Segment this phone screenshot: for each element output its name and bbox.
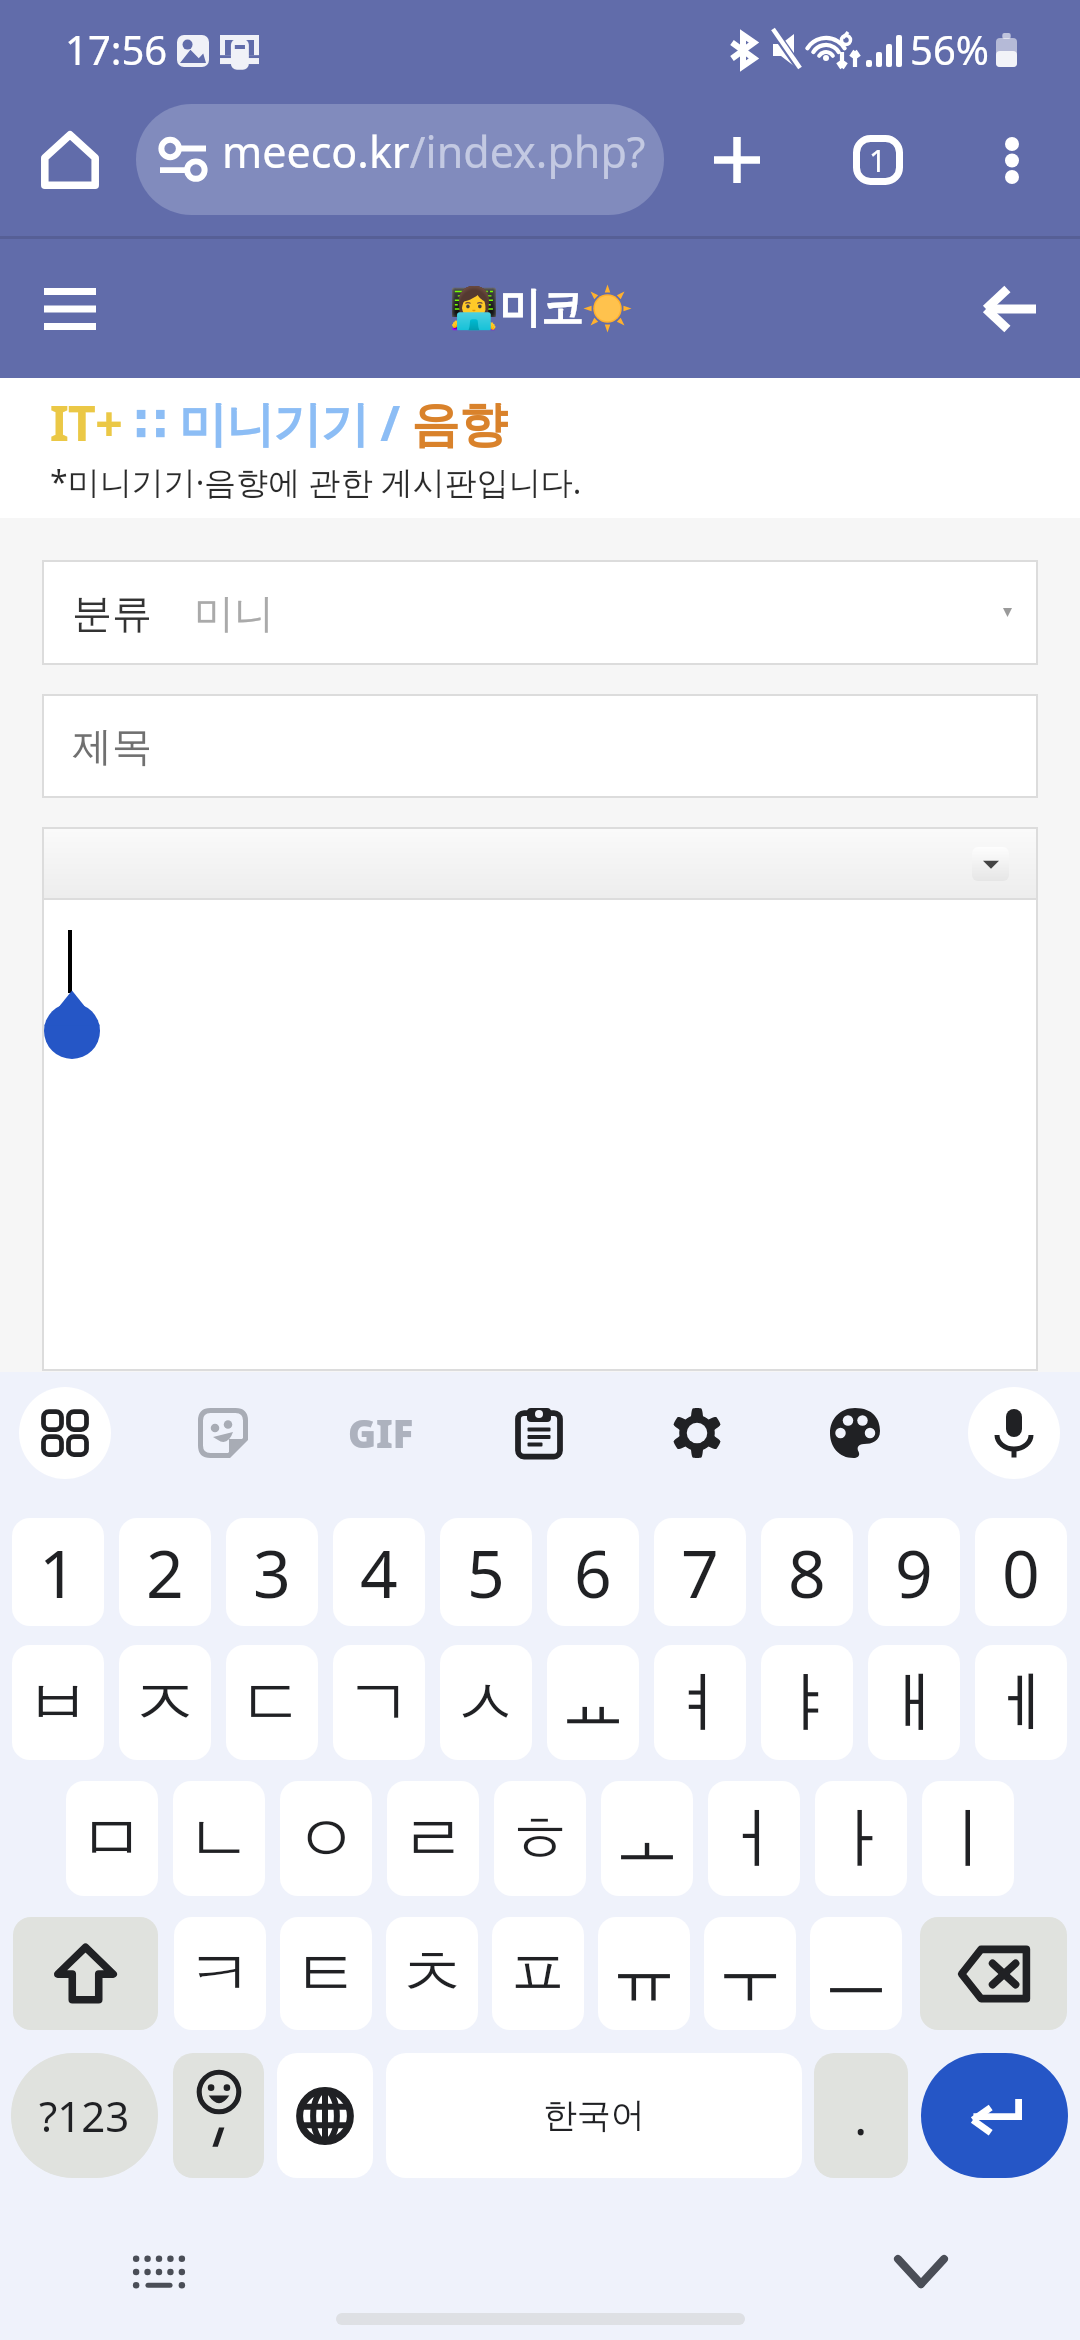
staticText: ㅅ [453,1661,519,1744]
staticText: ㅛ [560,1661,626,1744]
button[interactable]: ㅐ [868,1645,960,1760]
button[interactable]: 0 [975,1518,1067,1626]
staticText: ㅕ [667,1661,733,1744]
staticText: ㅇ [293,1797,359,1880]
staticText: 8 [788,1527,826,1617]
button[interactable]: 2 [119,1518,211,1626]
button[interactable]: ㅔ [975,1645,1067,1760]
button[interactable]: ㅑ [761,1645,853,1760]
staticText: ㄱ [346,1661,412,1744]
button[interactable]: ㅡ [810,1917,902,2030]
staticText: 56% [910,22,989,76]
button[interactable]: 분류 [42,560,1038,665]
staticText: ㅂ [25,1661,91,1744]
staticText: 17:56 [65,22,168,76]
staticText: 3 [253,1527,291,1617]
button[interactable]: ㅕ [654,1645,746,1760]
button[interactable]: ㅗ [601,1781,693,1896]
staticText: ㅐ [881,1661,947,1744]
staticText: ㅗ [614,1797,680,1880]
staticText: 7 [681,1527,719,1617]
staticText: ㅍ [505,1932,571,2015]
button[interactable]: 5 [440,1518,532,1626]
staticText: 0 [1002,1527,1040,1617]
button[interactable]: Editor options [972,847,1009,881]
button[interactable]: ㅏ [815,1781,907,1896]
staticText: . [854,2082,868,2150]
button[interactable]: Enter [921,2053,1068,2178]
staticText: 미코 [499,282,583,335]
staticText: ㅔ [988,1661,1054,1744]
button[interactable]: Themes [809,1387,901,1479]
button[interactable]: ㅂ [12,1645,104,1760]
staticText: ㅋ [187,1932,253,2015]
button[interactable]: 제목 [42,694,1038,798]
button[interactable]: Stickers [177,1387,269,1479]
button[interactable]: Menu [20,259,120,359]
staticText: 9 [895,1527,933,1617]
button[interactable]: ㅊ [386,1917,478,2030]
button[interactable]: ㄱ [333,1645,425,1760]
button[interactable]: ㅁ [66,1781,158,1896]
button[interactable]: ㅇ [280,1781,372,1896]
button[interactable]: ?123 [11,2053,158,2178]
staticText: IT+ ∷ 미니기기 / 음향 [50,390,507,456]
button[interactable]: 6 [547,1518,639,1626]
button[interactable]: Clipboard [493,1387,585,1479]
button[interactable]: More options [966,114,1058,206]
button[interactable]: GIF [335,1387,427,1479]
button[interactable]: Voice input [968,1387,1060,1479]
button[interactable]: Tabs [832,114,924,206]
button[interactable]: ㅈ [119,1645,211,1760]
staticText: 미니 [194,588,274,638]
button[interactable]: ㅜ [704,1917,796,2030]
button[interactable]: ㄹ [387,1781,479,1896]
button[interactable]: 3 [226,1518,318,1626]
button[interactable]: 7 [654,1518,746,1626]
button[interactable]: 8 [761,1518,853,1626]
button[interactable]: ㅠ [598,1917,690,2030]
button[interactable]: ㅎ [494,1781,586,1896]
button[interactable]: Settings [651,1387,743,1479]
button[interactable]: ㅓ [708,1781,800,1896]
button[interactable]: Shift [13,1917,158,2030]
button[interactable]: Keyboard layout [113,2226,205,2318]
button[interactable]: Keyboard modes [19,1387,111,1479]
button[interactable]: meeco.kr/index.php? [136,104,664,215]
button[interactable]: ㅅ [440,1645,532,1760]
button[interactable]: ㅛ [547,1645,639,1760]
staticText: ㄹ [400,1797,466,1880]
staticText: ㅜ [717,1932,783,2015]
staticText: ㅣ [935,1797,1001,1880]
staticText: meeco.kr/index.php? [222,122,646,181]
button[interactable]: ㄴ [173,1781,265,1896]
button[interactable]: Back [960,259,1060,359]
button[interactable]: ㅣ [922,1781,1014,1896]
button[interactable]: Emoji [173,2053,264,2178]
button[interactable]: Backspace [920,1917,1067,2030]
staticText: ㅌ [293,1932,359,2015]
staticText: *미니기기·음향에 관한 게시판입니다. [50,460,582,504]
button[interactable]: Home [28,118,112,202]
button[interactable]: . [814,2053,908,2178]
staticText: ㅊ [399,1932,465,2015]
button[interactable]: 4 [333,1518,425,1626]
button[interactable]: ㅍ [492,1917,584,2030]
staticText: ㄴ [186,1797,252,1880]
button[interactable]: ㅋ [174,1917,266,2030]
staticText: 6 [574,1527,612,1617]
button[interactable]: 1 [12,1518,104,1626]
staticText: 5 [467,1527,505,1617]
button[interactable]: Change language [277,2053,373,2178]
staticText: ㅡ [823,1932,889,2015]
button[interactable]: Hide keyboard [875,2225,967,2317]
button[interactable]: ㅌ [280,1917,372,2030]
button[interactable]: ㄷ [226,1645,318,1760]
staticText: 한국어 [543,2094,645,2137]
staticText: ㅓ [721,1797,787,1880]
button[interactable]: New tab [691,114,783,206]
button[interactable]: 한국어 [386,2053,802,2178]
staticText: ㅑ [774,1661,840,1744]
button[interactable]: 9 [868,1518,960,1626]
staticText: ㅁ [79,1797,145,1880]
